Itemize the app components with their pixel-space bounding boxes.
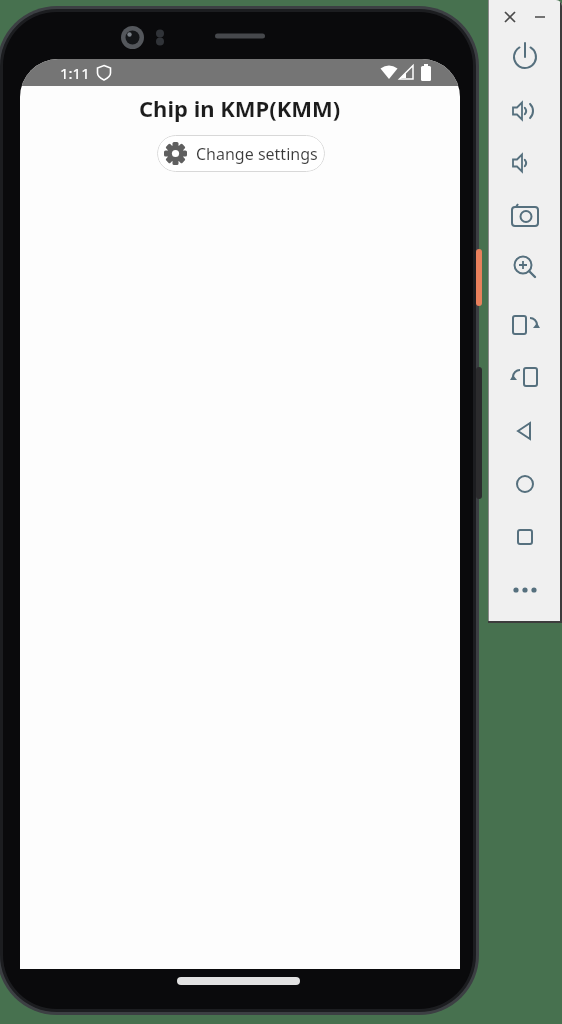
button[interactable]: Change settings bbox=[157, 135, 325, 172]
staticText: 1:11 bbox=[60, 63, 90, 83]
button[interactable] bbox=[488, 408, 562, 459]
button[interactable] bbox=[488, 0, 562, 51]
staticText: Chip in KMP(KMM) bbox=[139, 93, 341, 123]
button[interactable] bbox=[488, 561, 562, 612]
button[interactable] bbox=[488, 306, 562, 357]
button[interactable] bbox=[488, 102, 562, 153]
button[interactable] bbox=[488, 255, 562, 306]
button[interactable] bbox=[488, 51, 562, 102]
button[interactable] bbox=[488, 153, 562, 204]
button[interactable] bbox=[488, 357, 562, 408]
button[interactable] bbox=[488, 459, 562, 510]
button[interactable] bbox=[488, 204, 562, 255]
button[interactable] bbox=[488, 510, 562, 561]
staticText: Change settings bbox=[196, 143, 318, 165]
